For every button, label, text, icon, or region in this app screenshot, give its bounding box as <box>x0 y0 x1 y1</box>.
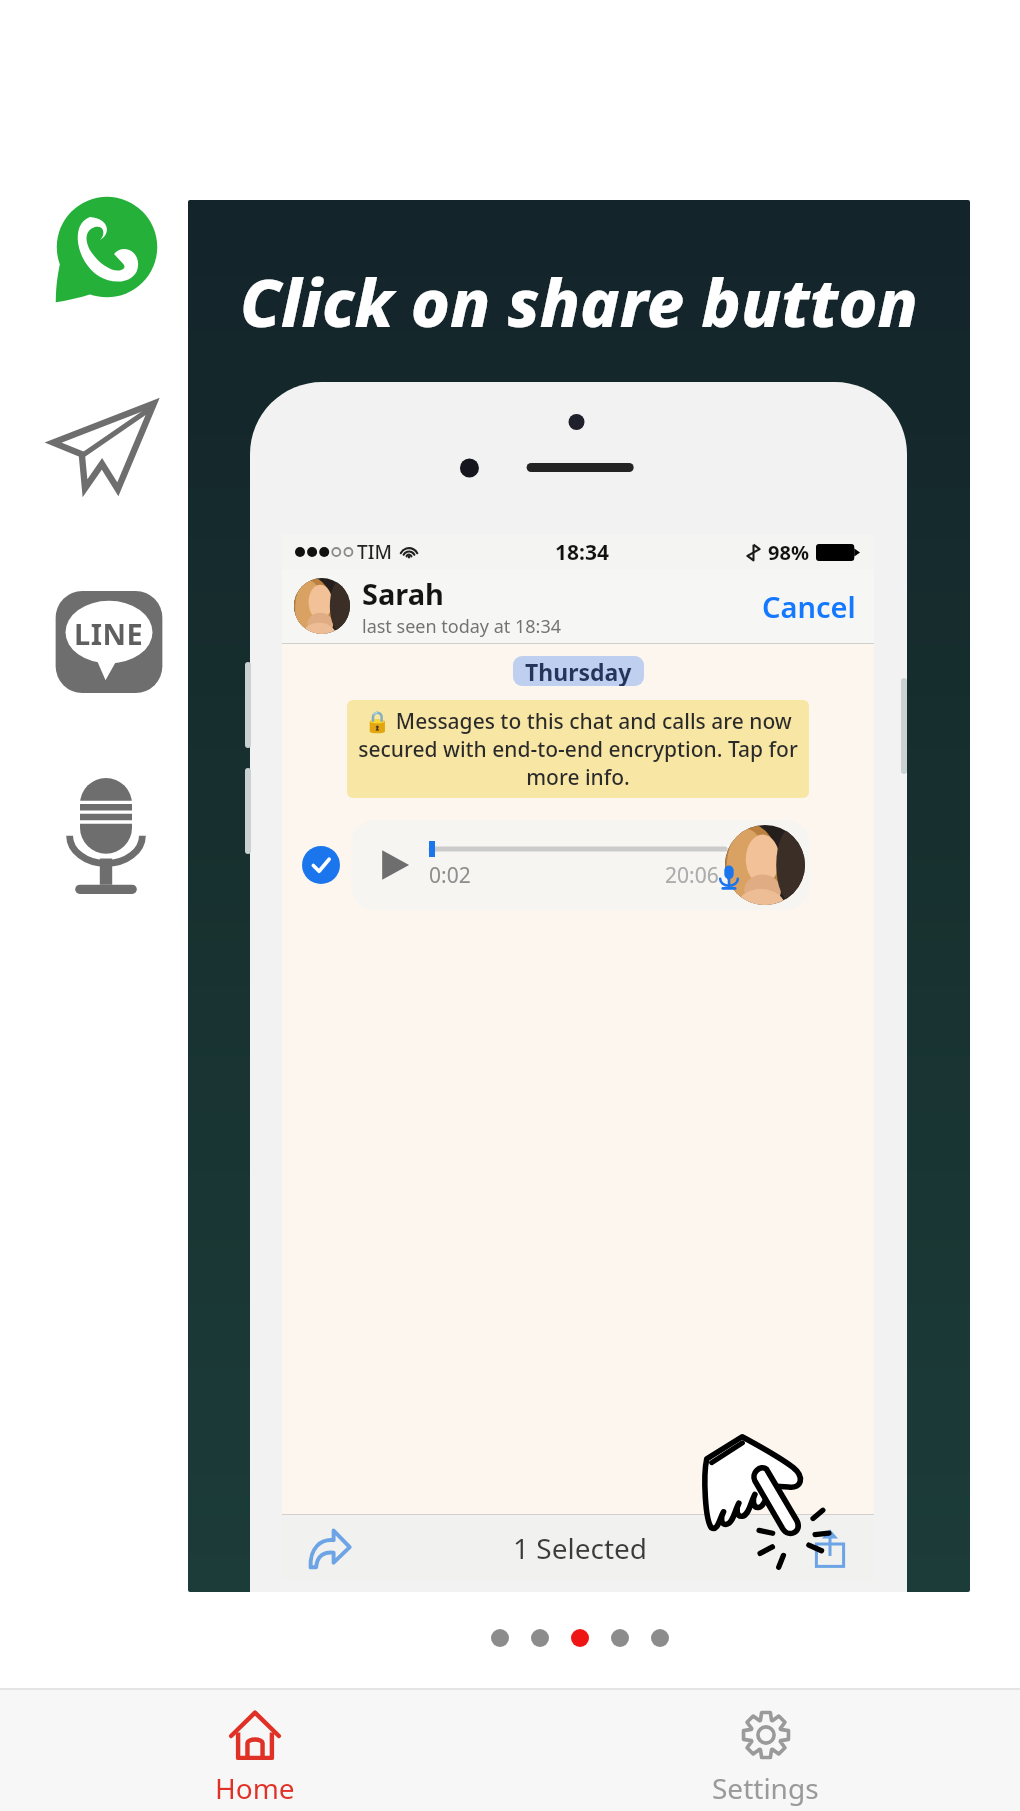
button[interactable] <box>531 1629 549 1647</box>
button[interactable]: Share <box>810 1528 850 1568</box>
button[interactable] <box>651 1629 669 1647</box>
button[interactable]: Voice recorder <box>66 778 146 900</box>
button[interactable]: Cancel <box>758 583 860 630</box>
staticText: 18:34 <box>555 538 609 567</box>
button[interactable]: Forward <box>306 1525 352 1571</box>
button[interactable]: Home <box>0 1690 510 1811</box>
staticText: Click on share button <box>188 256 970 346</box>
button[interactable] <box>491 1629 509 1647</box>
staticText: Home <box>215 1769 295 1807</box>
staticText: 🔒 Messages to this chat and calls are no… <box>353 707 803 791</box>
button[interactable]: Settings <box>510 1690 1020 1811</box>
button[interactable]: LINE <box>51 584 167 700</box>
staticText: LINE <box>74 614 144 653</box>
staticText: 1 Selected <box>513 1529 648 1567</box>
staticText: 98% <box>768 539 809 566</box>
staticText: 20:06 <box>665 861 719 890</box>
button[interactable]: Telegram <box>50 396 156 502</box>
button[interactable] <box>611 1629 629 1647</box>
button[interactable]: WhatsApp <box>53 199 161 307</box>
button[interactable] <box>571 1629 589 1647</box>
staticText: Sarah <box>362 574 444 613</box>
staticText: Cancel <box>762 587 856 626</box>
staticText: TIM <box>357 539 392 565</box>
staticText: Thursday <box>525 656 632 686</box>
staticText: 0:02 <box>429 861 471 890</box>
staticText: Settings <box>712 1769 819 1807</box>
staticText: last seen today at 18:34 <box>362 614 561 639</box>
